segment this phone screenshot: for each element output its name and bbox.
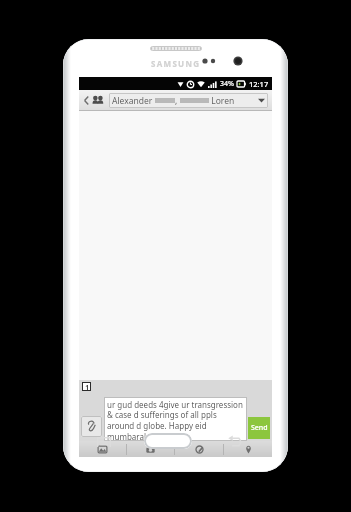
staticText: 34% bbox=[220, 79, 234, 89]
button[interactable]: Menu bbox=[97, 437, 111, 447]
button[interactable]: Alexander bbox=[109, 93, 268, 108]
staticText: SAMSUNG bbox=[151, 58, 201, 69]
button[interactable]: Up bbox=[82, 90, 106, 111]
staticText: 1 bbox=[85, 383, 89, 390]
staticText: 12:17 bbox=[249, 79, 269, 89]
button[interactable]: Back bbox=[228, 437, 242, 447]
button[interactable]: Take photo bbox=[127, 441, 174, 457]
staticText: Alexander bbox=[112, 95, 155, 107]
button[interactable]: ur gud deeds 4give ur transgression & ca… bbox=[104, 397, 247, 441]
staticText: Loren bbox=[209, 95, 235, 107]
staticText: ur gud deeds 4give ur transgression & ca… bbox=[107, 399, 245, 441]
button[interactable]: Send bbox=[248, 417, 270, 439]
button[interactable]: Draw bbox=[175, 441, 223, 457]
button[interactable]: Location bbox=[224, 441, 272, 457]
button[interactable]: Insert picture bbox=[79, 441, 126, 457]
button[interactable]: Home bbox=[144, 433, 192, 449]
staticText: , bbox=[175, 95, 180, 107]
button[interactable]: Attach bbox=[81, 416, 102, 437]
staticText: Send bbox=[251, 423, 268, 433]
